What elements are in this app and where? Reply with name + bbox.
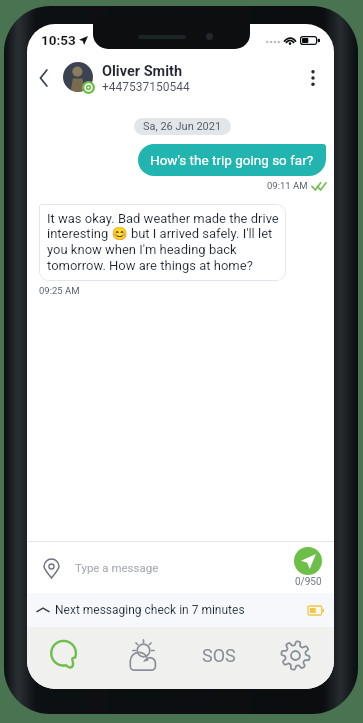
button[interactable]: Back <box>27 61 61 95</box>
staticText: Sa, 26 Jun 2021 <box>143 120 222 133</box>
button[interactable]: Weather <box>103 627 180 689</box>
staticText: SOS <box>202 645 236 666</box>
button[interactable]: Messages <box>27 627 103 689</box>
button[interactable]: Settings <box>257 627 334 689</box>
button[interactable]: Send <box>294 547 322 575</box>
staticText: Next messaging check in 7 minutes <box>55 603 245 617</box>
staticText: 0/950 <box>295 576 322 588</box>
staticText: 09:11 AM <box>267 180 308 191</box>
staticText: 09:25 AM <box>39 285 80 296</box>
button[interactable]: More options <box>296 61 330 95</box>
staticText: How's the trip going so far? <box>150 152 314 168</box>
staticText: Type a message <box>75 561 159 574</box>
button[interactable]: Next messaging check in 7 minutes <box>27 593 334 627</box>
staticText: Oliver Smith <box>102 63 183 80</box>
staticText: It was okay. Bad weather made the drive … <box>47 211 280 274</box>
button[interactable]: SOS <box>180 627 257 689</box>
staticText: 10:53 <box>41 32 76 48</box>
button[interactable]: Location <box>39 556 63 580</box>
staticText: +447537150544 <box>102 80 190 94</box>
